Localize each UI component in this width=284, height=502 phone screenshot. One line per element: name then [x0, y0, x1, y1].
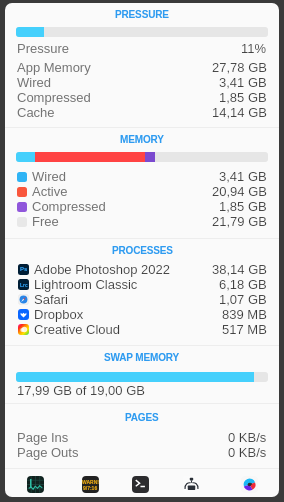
staticText: Page Outs: [17, 445, 79, 460]
staticText: 20,94 GB: [212, 184, 267, 199]
staticText: PROCESSES: [112, 245, 173, 256]
button[interactable]: Browser: [241, 476, 258, 493]
staticText: WARN!: [82, 479, 99, 485]
staticText: 0 KB/s: [228, 445, 267, 460]
staticText: Wired: [32, 169, 66, 184]
button[interactable]: Terminal: [132, 476, 149, 493]
button[interactable]: App Memory: [5, 60, 279, 75]
staticText: Free: [32, 214, 59, 229]
staticText: 14,14 GB: [212, 105, 267, 120]
button[interactable]: Hazel: [183, 476, 200, 493]
staticText: SWAP MEMORY: [104, 352, 180, 363]
button[interactable]: Page Outs: [5, 445, 279, 460]
button[interactable]: Free: [5, 214, 279, 229]
button[interactable]: Ps: [5, 262, 279, 277]
button[interactable]: Warning: [82, 476, 99, 493]
button[interactable]: Cache: [5, 105, 279, 120]
staticText: MEMORY: [120, 134, 164, 145]
staticText: Safari: [34, 292, 68, 307]
staticText: PAGES: [125, 412, 159, 423]
button[interactable]: Pressure: [5, 41, 279, 56]
staticText: 839 MB: [222, 307, 267, 322]
staticText: Wired: [17, 75, 51, 90]
staticText: Active: [32, 184, 68, 199]
button[interactable]: iStat Menus: [27, 476, 44, 493]
staticText: 6,18 GB: [219, 277, 267, 292]
button[interactable]: Dropbox: [5, 307, 279, 322]
staticText: 27,78 GB: [212, 60, 267, 75]
staticText: 517 MB: [222, 322, 267, 337]
button[interactable]: Compressed: [5, 199, 279, 214]
button[interactable]: Wired: [5, 169, 279, 184]
staticText: 1,85 GB: [219, 199, 267, 214]
staticText: Adobe Photoshop 2022: [34, 262, 170, 277]
staticText: 0 KB/s: [228, 430, 267, 445]
staticText: Page Ins: [17, 430, 69, 445]
staticText: Compressed: [17, 90, 91, 105]
staticText: Cache: [17, 105, 55, 120]
staticText: 38,14 GB: [212, 262, 267, 277]
staticText: Ps: [20, 266, 28, 273]
staticText: 3,41 GB: [219, 169, 267, 184]
staticText: Lightroom Classic: [34, 277, 138, 292]
button[interactable]: Active: [5, 184, 279, 199]
button[interactable]: Wired: [5, 75, 279, 90]
staticText: 21,79 GB: [212, 214, 267, 229]
button[interactable]: Lrc: [5, 277, 279, 292]
button[interactable]: Compressed: [5, 90, 279, 105]
staticText: Lrc: [20, 282, 28, 288]
staticText: 11%: [241, 41, 267, 56]
staticText: 3,41 GB: [219, 75, 267, 90]
staticText: Pressure: [17, 41, 70, 56]
staticText: 1,07 GB: [219, 292, 267, 307]
staticText: 9/7:16: [83, 485, 98, 491]
button[interactable]: Page Ins: [5, 430, 279, 445]
staticText: 1,85 GB: [219, 90, 267, 105]
button[interactable]: Safari: [5, 292, 279, 307]
staticText: Compressed: [32, 199, 106, 214]
staticText: Creative Cloud: [34, 322, 120, 337]
button[interactable]: Creative Cloud: [5, 322, 279, 337]
staticText: Dropbox: [34, 307, 84, 322]
staticText: PRESSURE: [115, 9, 169, 20]
staticText: 17,99 GB of 19,00 GB: [17, 383, 145, 397]
staticText: App Memory: [17, 60, 91, 75]
